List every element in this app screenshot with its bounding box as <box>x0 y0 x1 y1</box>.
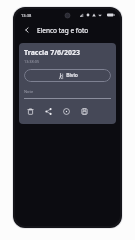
button[interactable]: Traccia 7/6/2023 <box>19 43 116 124</box>
staticText: Traccia 7/6/2023 <box>24 48 81 58</box>
staticText: 13:38:05 <box>24 59 40 64</box>
staticText: Bivio <box>66 72 78 79</box>
button[interactable]: Info <box>60 105 72 117</box>
staticText: Note <box>24 89 34 94</box>
button[interactable]: Share <box>42 105 54 117</box>
button[interactable]: Back <box>20 23 34 37</box>
staticText: Elenco tag e foto <box>37 26 89 35</box>
staticText: 13:38 <box>21 13 32 18</box>
button[interactable]: Save <box>78 105 90 117</box>
button[interactable]: Bivio <box>24 69 111 82</box>
button[interactable]: Delete <box>24 105 36 117</box>
